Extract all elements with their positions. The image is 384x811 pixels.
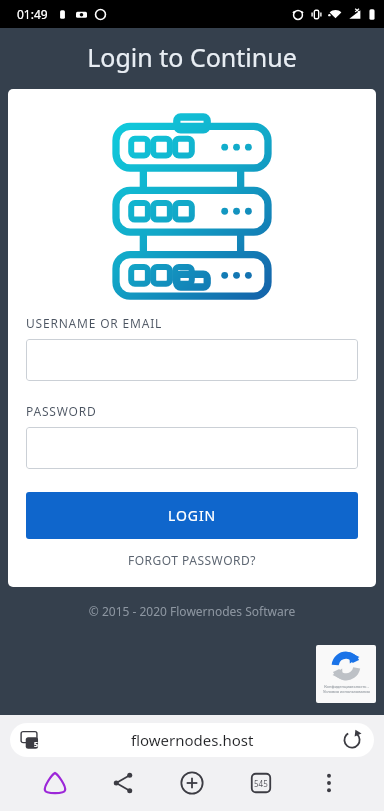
button[interactable]: Password xyxy=(26,427,358,469)
button[interactable]: Home xyxy=(41,769,69,797)
other: Tab count xyxy=(20,729,42,751)
button[interactable]: Tab count xyxy=(10,723,374,757)
staticText: USERNAME OR EMAIL xyxy=(26,315,163,331)
button[interactable]: Username or email xyxy=(26,339,358,381)
button[interactable]: New tab xyxy=(178,769,206,797)
button[interactable]: Tabs xyxy=(247,769,275,797)
staticText: flowernodes.host xyxy=(131,730,254,750)
staticText: 5 xyxy=(34,740,39,750)
staticText: 545 xyxy=(254,778,268,789)
button[interactable]: Share xyxy=(109,769,137,797)
staticText: 01:49 xyxy=(17,6,48,22)
staticText: Условия использования xyxy=(323,689,370,694)
staticText: PASSWORD xyxy=(26,403,97,419)
button[interactable]: FORGOT PASSWORD? xyxy=(26,539,358,581)
button[interactable]: More options xyxy=(315,769,343,797)
staticText: LOGIN xyxy=(168,506,217,525)
button[interactable]: Reload xyxy=(342,730,362,750)
button[interactable]: LOGIN xyxy=(26,492,358,539)
staticText: Конфиденциальность - xyxy=(324,684,369,689)
staticText: FORGOT PASSWORD? xyxy=(128,552,256,568)
staticText: © 2015 - 2020 Flowernodes Software xyxy=(0,603,384,619)
staticText: Login to Continue xyxy=(0,40,384,74)
button[interactable]: reCAPTCHA xyxy=(316,645,376,703)
